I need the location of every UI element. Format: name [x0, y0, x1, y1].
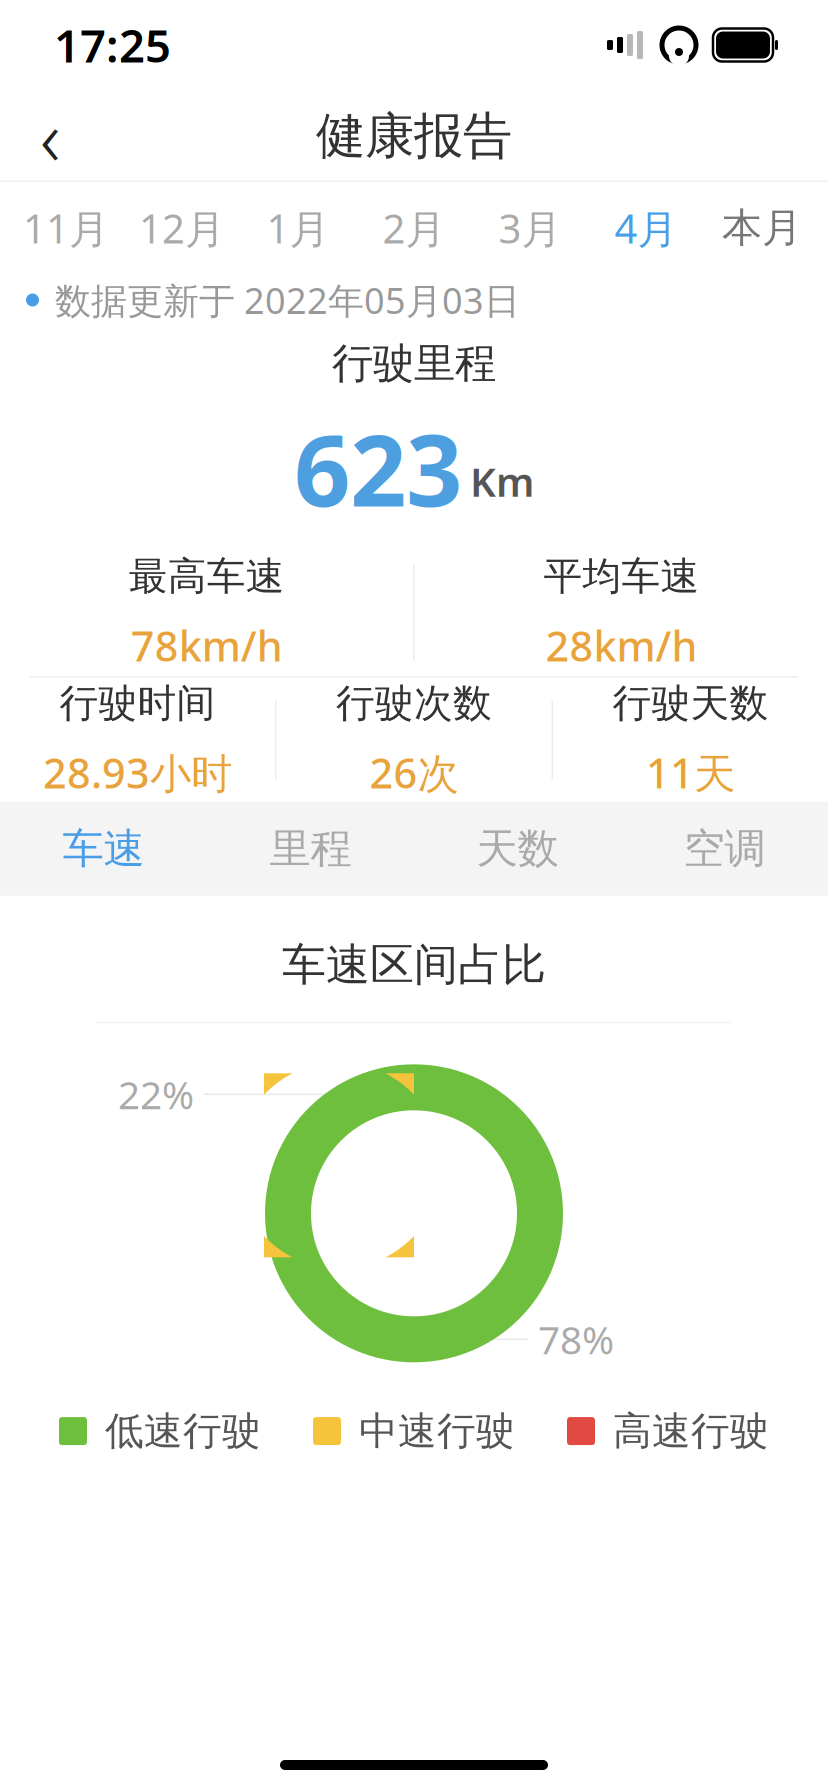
staticText: 本月	[722, 203, 802, 252]
staticText: 1月	[266, 201, 329, 254]
staticText: 11天	[646, 745, 735, 800]
button[interactable]: 本月	[704, 182, 820, 274]
staticText: 623	[294, 403, 462, 534]
staticText: 高速行驶	[613, 1407, 769, 1455]
staticText: 健康报告	[316, 106, 512, 166]
staticText: 28.93小时	[43, 745, 232, 800]
button[interactable]: 车速	[0, 802, 207, 896]
staticText: Km	[470, 455, 534, 508]
staticText: 行驶时间	[59, 680, 215, 727]
staticText: 17:25	[54, 15, 171, 75]
staticText: 中速行驶	[359, 1407, 515, 1455]
staticText: 数据更新于 2022年05月03日	[55, 276, 520, 324]
button[interactable]: 里程	[207, 802, 414, 896]
staticText: 车速区间占比	[282, 938, 546, 992]
button[interactable]: 天数	[414, 802, 621, 896]
staticText: 行驶天数	[612, 680, 768, 727]
staticText: 26次	[369, 745, 458, 800]
staticText: 2月	[382, 201, 445, 254]
button[interactable]: 3月	[472, 182, 588, 274]
staticText: 平均车速	[543, 553, 699, 600]
button[interactable]: 11月	[8, 182, 124, 274]
staticText: 78km/h	[131, 618, 283, 673]
staticText: 低速行驶	[105, 1407, 261, 1455]
staticText: 22%	[118, 1069, 194, 1120]
staticText: 行驶次数	[336, 680, 492, 727]
staticText: 里程	[269, 823, 351, 874]
staticText: 12月	[139, 201, 225, 254]
staticText: ‹	[40, 85, 60, 187]
button[interactable]: 2月	[356, 182, 472, 274]
staticText: 空调	[683, 823, 765, 874]
button[interactable]: 4月	[588, 182, 704, 274]
staticText: 78%	[538, 1314, 614, 1365]
staticText: 最高车速	[129, 553, 285, 600]
button[interactable]: Back	[0, 91, 100, 181]
button[interactable]: 空调	[621, 802, 828, 896]
button[interactable]: 12月	[124, 182, 240, 274]
staticText: 行驶里程	[332, 338, 496, 389]
button[interactable]: 1月	[240, 182, 356, 274]
staticText: 28km/h	[545, 618, 697, 673]
staticText: 3月	[498, 201, 561, 254]
staticText: 11月	[23, 201, 109, 254]
staticText: 车速	[62, 823, 144, 874]
staticText: 天数	[476, 823, 558, 874]
staticText: 4月	[614, 201, 677, 254]
